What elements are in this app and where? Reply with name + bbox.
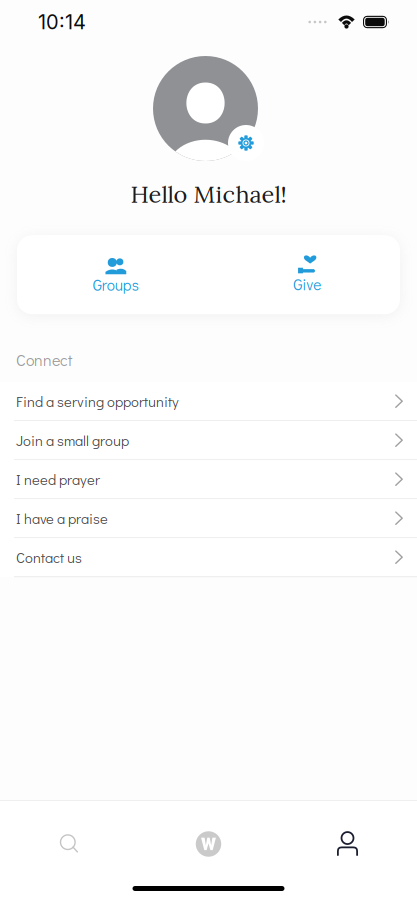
button[interactable]: Home <box>139 821 278 867</box>
button[interactable]: Give <box>208 235 400 314</box>
button[interactable]: Settings <box>228 125 264 161</box>
button[interactable]: Profile <box>278 821 417 867</box>
staticText: 10:14 <box>38 10 86 34</box>
button[interactable]: Find a serving opportunity <box>0 382 417 421</box>
staticText: Contact us <box>16 548 82 567</box>
button[interactable]: Groups <box>17 235 208 314</box>
button[interactable]: Search <box>0 821 139 867</box>
staticText: Hello Michael! <box>130 179 286 209</box>
staticText: I need prayer <box>16 470 100 489</box>
staticText: Groups <box>93 275 139 295</box>
button[interactable]: Contact us <box>0 538 417 577</box>
staticText: Give <box>293 274 321 294</box>
staticText: Connect <box>16 349 72 370</box>
button[interactable]: I need prayer <box>0 460 417 499</box>
staticText: I have a praise <box>16 509 108 528</box>
staticText: Find a serving opportunity <box>16 392 179 411</box>
staticText: Join a small group <box>16 431 129 450</box>
button[interactable]: Join a small group <box>0 421 417 460</box>
button[interactable]: I have a praise <box>0 499 417 538</box>
